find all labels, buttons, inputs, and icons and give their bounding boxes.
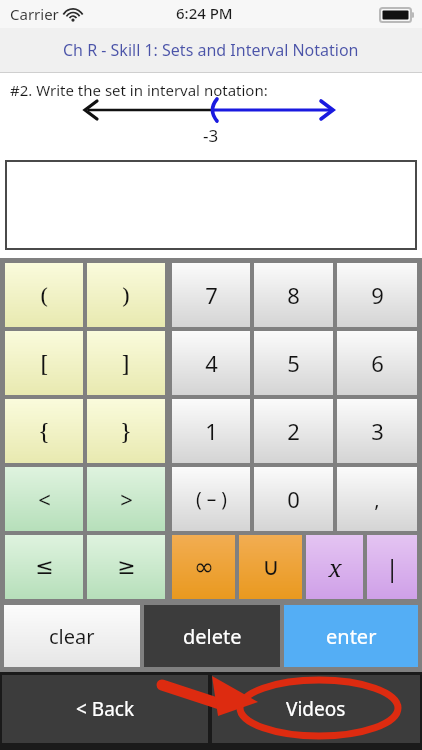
staticText: 1 [205, 416, 218, 446]
button[interactable]: ] [87, 331, 165, 395]
button[interactable]: 0 [254, 467, 333, 531]
button[interactable]: 3 [337, 399, 417, 463]
button[interactable]: < [5, 467, 83, 531]
staticText: < [38, 484, 51, 514]
staticText: , [374, 486, 380, 513]
staticText: 7 [205, 280, 218, 310]
staticText: delete [183, 623, 242, 650]
button[interactable]: , [337, 467, 417, 531]
staticText: | [385, 551, 399, 584]
staticText: enter [326, 623, 377, 650]
staticText: ) [122, 280, 130, 310]
button[interactable]: 7 [172, 263, 250, 327]
staticText: ( – ) [196, 486, 227, 512]
button[interactable]: ∪ [239, 535, 302, 599]
staticText: < Back [76, 696, 135, 722]
button[interactable]: 1 [172, 399, 250, 463]
staticText: -3 [203, 124, 219, 147]
button[interactable]: < Back [2, 675, 208, 743]
button[interactable]: ∞ [172, 535, 235, 599]
staticText: > [120, 484, 133, 514]
staticText: ] [122, 348, 130, 378]
button[interactable]: Videos [212, 675, 420, 743]
button[interactable]: ( – ) [172, 467, 250, 531]
button[interactable]: ≥ [87, 535, 165, 599]
staticText: 8 [287, 280, 300, 310]
staticText: 0 [287, 484, 300, 514]
staticText: ≤ [35, 554, 54, 580]
button[interactable]: delete [144, 605, 280, 667]
button[interactable]: } [87, 399, 165, 463]
button[interactable]: [ [5, 331, 83, 395]
staticText: 5 [287, 348, 300, 378]
button[interactable]: enter [284, 605, 418, 667]
staticText: 2 [287, 416, 300, 446]
button[interactable]: x [306, 535, 363, 599]
staticText: 6:24 PM [176, 3, 233, 23]
staticText: [ [40, 348, 48, 378]
staticText: Carrier [10, 4, 59, 24]
staticText: 6 [371, 348, 384, 378]
staticText: 3 [371, 416, 384, 446]
button[interactable]: ≤ [5, 535, 83, 599]
button[interactable]: { [5, 399, 83, 463]
staticText: ∪ [262, 553, 280, 581]
staticText: 4 [205, 348, 218, 378]
button[interactable]: ( [5, 263, 83, 327]
button[interactable]: ) [87, 263, 165, 327]
staticText: ≥ [117, 554, 136, 580]
button[interactable]: 8 [254, 263, 333, 327]
staticText: ( [40, 280, 48, 310]
staticText: { [39, 416, 49, 446]
staticText: clear [49, 623, 95, 650]
staticText: #2. Write the set in interval notation: [10, 80, 268, 100]
staticText: Videos [286, 696, 346, 722]
staticText: Ch R - Skill 1: Sets and Interval Notati… [63, 39, 359, 61]
staticText: ∞ [194, 553, 214, 581]
button[interactable]: 4 [172, 331, 250, 395]
button[interactable]: 2 [254, 399, 333, 463]
staticText: } [121, 416, 131, 446]
button[interactable]: 5 [254, 331, 333, 395]
staticText: 9 [371, 280, 384, 310]
button[interactable]: | [367, 535, 417, 599]
button[interactable]: 6 [337, 331, 417, 395]
button[interactable]: clear [4, 605, 140, 667]
staticText: x [328, 551, 342, 584]
button[interactable]: 9 [337, 263, 417, 327]
button[interactable]: > [87, 467, 165, 531]
